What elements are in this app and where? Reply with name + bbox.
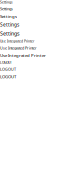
staticText: LOGOUT <box>0 60 12 65</box>
staticText: Settings <box>0 0 13 4</box>
staticText: Settings <box>0 13 17 19</box>
staticText: Use Integrated Printer <box>0 39 34 43</box>
staticText: LOGOUT <box>0 74 16 80</box>
staticText: Use Integrated Printer <box>0 52 46 58</box>
staticText: LOGOUT <box>0 67 16 72</box>
staticText: Settings <box>0 30 20 37</box>
staticText: Settings <box>0 21 19 28</box>
staticText: Settings <box>0 6 13 11</box>
staticText: Use Integrated Printer <box>0 45 37 50</box>
